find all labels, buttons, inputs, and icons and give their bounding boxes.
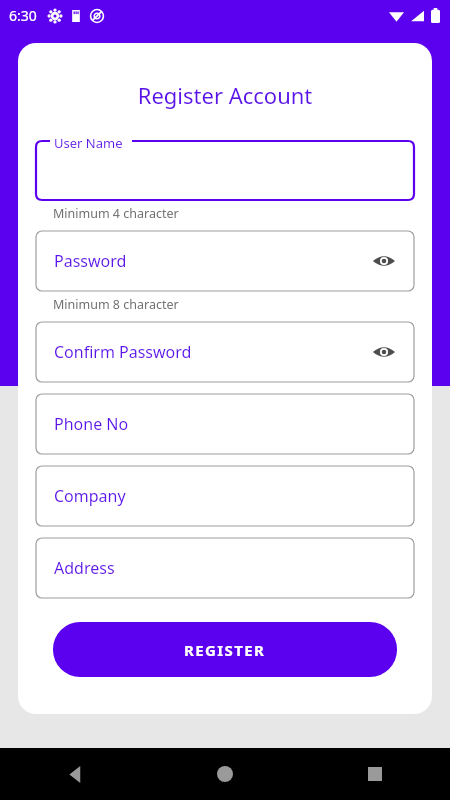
button[interactable]: Company — [36, 466, 414, 526]
button[interactable]: Recents — [300, 748, 450, 800]
button[interactable]: Back — [0, 748, 150, 800]
button[interactable]: Toggle password visibility — [368, 336, 400, 368]
button[interactable]: Password — [36, 231, 414, 291]
button[interactable]: Toggle password visibility — [368, 245, 400, 277]
button[interactable]: User Name — [36, 134, 414, 200]
button[interactable]: Address — [36, 538, 414, 598]
staticText: Password — [54, 250, 127, 272]
staticText: 6:30 — [9, 6, 37, 25]
staticText: Register Account — [18, 80, 432, 110]
button[interactable]: Phone No — [36, 394, 414, 454]
staticText: Minimum 8 character — [53, 296, 179, 313]
staticText: Company — [54, 485, 126, 507]
button[interactable]: Confirm Password — [36, 322, 414, 382]
button[interactable]: Home — [150, 748, 300, 800]
button[interactable]: REGISTER — [53, 622, 397, 677]
staticText: Minimum 4 character — [53, 205, 179, 222]
staticText: Phone No — [54, 413, 129, 435]
staticText: REGISTER — [184, 640, 266, 660]
staticText: User Name — [54, 134, 123, 152]
staticText: Address — [54, 557, 115, 579]
staticText: Confirm Password — [54, 341, 192, 363]
